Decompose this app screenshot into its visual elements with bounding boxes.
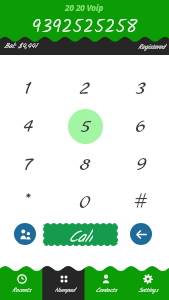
staticText: 6 (136, 112, 146, 141)
button[interactable]: 4 (0, 107, 57, 145)
button[interactable]: 7 (0, 145, 57, 183)
staticText: 20 20 Voip (65, 2, 104, 13)
button[interactable]: Contacts (85, 260, 127, 300)
button[interactable]: 6 (113, 107, 169, 145)
staticText: Settings (138, 286, 158, 296)
button[interactable]: 1 (0, 69, 57, 107)
button[interactable]: # (113, 183, 169, 221)
staticText: Call (68, 225, 93, 248)
button[interactable]: 9 (113, 145, 169, 183)
staticText: # (134, 188, 148, 217)
button[interactable]: Settings (127, 260, 169, 300)
staticText: 2 (80, 74, 90, 103)
button[interactable]: 2 (57, 69, 113, 107)
staticText: 7 (25, 150, 33, 179)
button[interactable]: 3 (113, 69, 169, 107)
staticText: 3 (136, 74, 146, 103)
staticText: 8 (80, 150, 91, 179)
staticText: 0 (80, 188, 91, 217)
staticText: 9392525258 (32, 12, 138, 41)
button[interactable]: Backspace (130, 223, 152, 245)
button[interactable]: * (0, 183, 57, 221)
staticText: 4 (24, 112, 33, 141)
button[interactable]: Numpad (43, 260, 85, 300)
button[interactable]: Recents (0, 260, 43, 300)
staticText: 1 (26, 74, 32, 103)
button[interactable]: Call (43, 223, 118, 246)
button[interactable]: 0 (57, 183, 113, 221)
button[interactable]: 8 (57, 145, 113, 183)
staticText: Contacts (95, 286, 117, 296)
button[interactable]: 5 (57, 107, 113, 145)
staticText: Numpad (54, 286, 75, 296)
staticText: * (26, 188, 31, 217)
staticText: 5 (81, 112, 90, 141)
staticText: 9 (137, 150, 146, 179)
staticText: Registered (138, 42, 165, 52)
button[interactable]: Contacts (14, 223, 36, 245)
staticText: Bal: $4,441 (4, 41, 37, 52)
staticText: Recents (12, 286, 31, 296)
